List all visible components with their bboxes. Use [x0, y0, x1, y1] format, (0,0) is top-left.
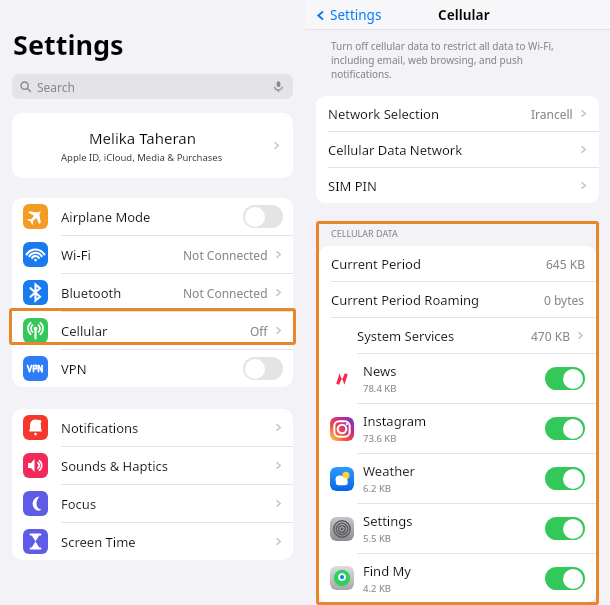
button[interactable]: Notifications: [12, 409, 293, 446]
button[interactable]: Airplane Mode: [12, 198, 293, 235]
staticText: Off: [250, 323, 268, 339]
button[interactable]: On: [545, 517, 585, 540]
button[interactable]: Settings: [312, 3, 385, 27]
button[interactable]: Instagram: [319, 404, 596, 453]
button[interactable]: Current Period: [319, 246, 596, 281]
staticText: Turn off cellular data to restrict all d…: [331, 39, 554, 81]
button[interactable]: Bluetooth: [12, 274, 293, 311]
button[interactable]: On: [545, 567, 585, 590]
staticText: Settings: [363, 512, 413, 530]
button[interactable]: On: [545, 417, 585, 440]
staticText: Current Period: [331, 255, 421, 273]
staticText: Irancell: [531, 106, 573, 122]
button[interactable]: Sounds & Haptics: [12, 447, 293, 484]
button[interactable]: Network Selection: [316, 96, 599, 131]
staticText: Focus: [61, 495, 97, 513]
staticText: Instagram: [363, 412, 427, 430]
staticText: Not Connected: [183, 285, 268, 301]
button[interactable]: VPN: [12, 350, 293, 387]
button[interactable]: Find My: [319, 554, 596, 602]
staticText: News: [363, 362, 397, 380]
staticText: Cellular: [61, 322, 108, 340]
staticText: Notifications: [61, 419, 139, 437]
staticText: Bluetooth: [61, 284, 122, 302]
staticText: Settings: [330, 6, 382, 24]
staticText: Network Selection: [328, 105, 440, 123]
button[interactable]: On: [545, 467, 585, 490]
staticText: Screen Time: [61, 533, 136, 551]
button[interactable]: Screen Time: [12, 523, 293, 560]
staticText: Current Period Roaming: [331, 291, 480, 309]
staticText: 470 KB: [531, 328, 570, 344]
button[interactable]: System Services: [319, 318, 596, 353]
staticText: Weather: [363, 462, 415, 480]
staticText: CELLULAR DATA: [331, 227, 398, 239]
staticText: 5.5 KB: [363, 532, 391, 545]
button[interactable]: Off: [243, 357, 283, 380]
button[interactable]: Weather: [319, 454, 596, 503]
button[interactable]: Focus: [12, 485, 293, 522]
staticText: Cellular: [438, 6, 490, 24]
button[interactable]: On: [545, 367, 585, 390]
staticText: Not Connected: [183, 247, 268, 263]
staticText: Wi-Fi: [61, 246, 91, 264]
button[interactable]: SIM PIN: [316, 168, 599, 203]
staticText: 4.2 KB: [363, 582, 391, 595]
staticText: 645 KB: [546, 256, 585, 272]
button[interactable]: Cellular Data Network: [316, 132, 599, 167]
staticText: Find My: [363, 562, 411, 580]
staticText: System Services: [357, 327, 455, 345]
staticText: 73.6 KB: [363, 432, 397, 445]
button[interactable]: Current Period Roaming: [319, 282, 596, 317]
button[interactable]: Cellular: [12, 312, 293, 349]
button[interactable]: News: [319, 354, 596, 403]
staticText: 78.4 KB: [363, 382, 397, 395]
staticText: VPN: [61, 360, 87, 378]
staticText: Sounds & Haptics: [61, 457, 169, 475]
staticText: Airplane Mode: [61, 208, 151, 226]
staticText: 0 bytes: [544, 292, 585, 308]
staticText: Apple ID, iCloud, Media & Purchases: [61, 151, 223, 164]
button[interactable]: Off: [243, 205, 283, 228]
staticText: 6.2 KB: [363, 482, 391, 495]
button[interactable]: Melika Taheran: [12, 113, 293, 178]
staticText: SIM PIN: [328, 177, 377, 195]
button[interactable]: Wi-Fi: [12, 236, 293, 273]
staticText: Melika Taheran: [89, 128, 196, 148]
button[interactable]: Settings: [319, 504, 596, 553]
staticText: Search: [37, 79, 75, 95]
button[interactable]: Search: [12, 74, 293, 99]
staticText: Settings: [13, 26, 124, 63]
staticText: Cellular Data Network: [328, 141, 463, 159]
